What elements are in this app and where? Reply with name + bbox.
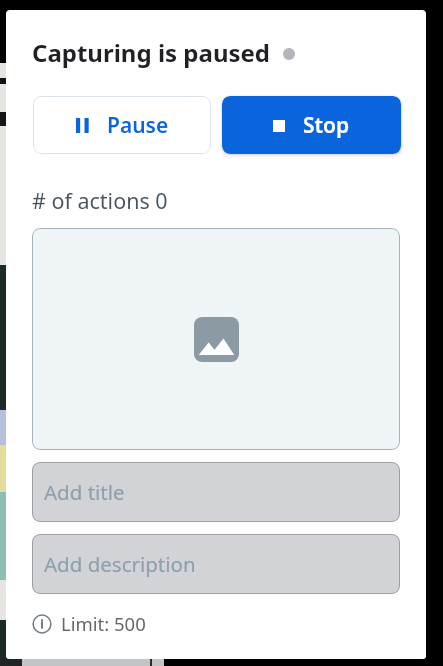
button[interactable]: Pause: [33, 96, 211, 154]
button[interactable]: Add title: [32, 462, 400, 522]
button[interactable]: Stop: [222, 96, 401, 154]
staticText: Capturing is paused: [32, 36, 271, 69]
staticText: Stop: [303, 111, 350, 140]
button[interactable]: Add description: [32, 534, 400, 594]
button[interactable]: Add screenshot: [32, 228, 400, 450]
staticText: Pause: [107, 111, 169, 140]
staticText: Add title: [44, 478, 125, 506]
staticText: Add description: [44, 550, 196, 578]
staticText: # of actions 0: [32, 186, 168, 215]
staticText: Limit: 500: [61, 611, 146, 636]
